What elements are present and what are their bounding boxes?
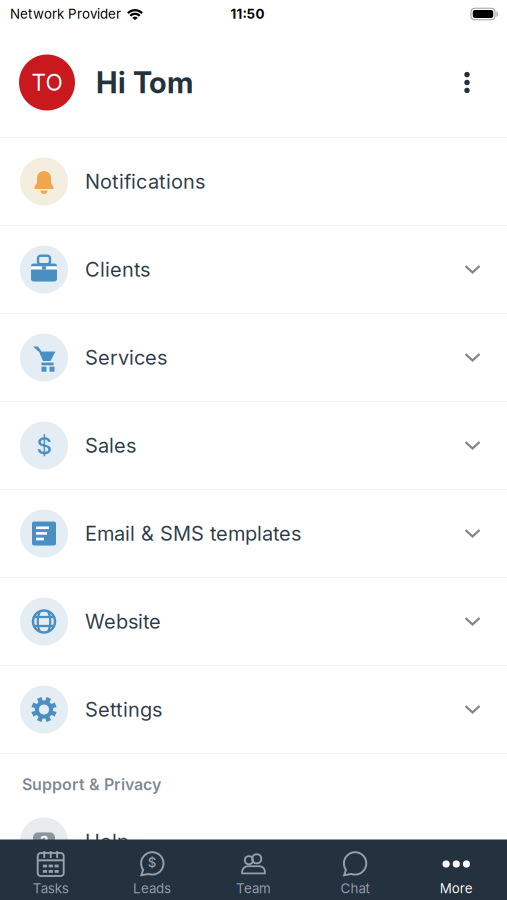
staticText: $ bbox=[36, 431, 51, 460]
button[interactable]: ? bbox=[0, 794, 507, 885]
staticText: ? bbox=[40, 833, 48, 850]
staticText: $ bbox=[148, 855, 157, 870]
button[interactable]: Settings bbox=[0, 666, 507, 754]
staticText: Email & SMS templates bbox=[85, 522, 301, 545]
staticText: Support & Privacy bbox=[22, 775, 161, 794]
staticText: Settings bbox=[85, 698, 162, 721]
staticText: Services bbox=[85, 346, 167, 369]
button[interactable]: Services bbox=[0, 314, 507, 402]
staticText: Sales bbox=[85, 434, 136, 457]
button[interactable]: Tasks bbox=[0, 839, 101, 900]
button[interactable]: Email & SMS templates bbox=[0, 490, 507, 578]
button[interactable]: Website bbox=[0, 578, 507, 666]
staticText: Team bbox=[236, 880, 271, 896]
staticText: Tasks bbox=[33, 880, 69, 896]
staticText: TO bbox=[31, 69, 62, 96]
staticText: Website bbox=[85, 610, 161, 633]
staticText: Network Provider bbox=[10, 6, 121, 22]
button[interactable]: Notifications bbox=[0, 138, 507, 226]
staticText: 11:50 bbox=[230, 6, 264, 22]
button[interactable]: $ bbox=[101, 839, 203, 900]
staticText: More bbox=[440, 880, 473, 896]
staticText: Chat bbox=[340, 880, 369, 896]
staticText: Notifications bbox=[85, 170, 205, 193]
staticText: Help bbox=[85, 830, 129, 853]
button[interactable]: Team bbox=[203, 839, 304, 900]
button[interactable]: More options bbox=[447, 57, 487, 107]
button[interactable]: $ bbox=[0, 402, 507, 490]
staticText: Clients bbox=[85, 258, 150, 281]
button[interactable]: More bbox=[406, 839, 507, 900]
staticText: Hi Tom bbox=[96, 65, 193, 100]
button[interactable]: Clients bbox=[0, 226, 507, 314]
button[interactable]: Chat bbox=[304, 839, 406, 900]
staticText: Leads bbox=[133, 880, 171, 896]
